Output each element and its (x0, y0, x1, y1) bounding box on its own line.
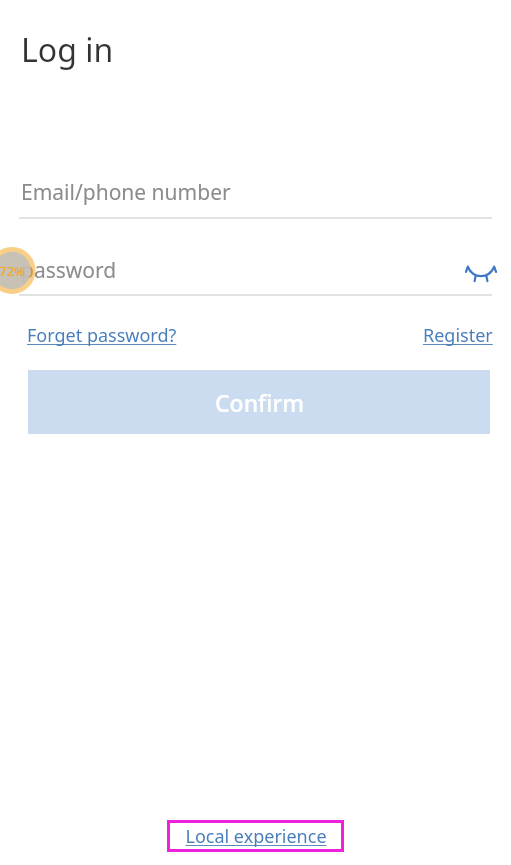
staticText: Register (423, 323, 493, 348)
staticText: Local experience (185, 824, 327, 849)
staticText: Log in (21, 28, 114, 72)
staticText: password (21, 256, 117, 285)
button[interactable]: Local experience (167, 820, 344, 852)
button[interactable]: Show password (462, 252, 500, 290)
button[interactable]: Register (423, 323, 493, 348)
staticText: Email/phone number (21, 178, 231, 207)
staticText: 72% (0, 262, 25, 280)
staticText: Forget password? (27, 323, 177, 348)
button[interactable]: Email/phone number (0, 167, 511, 217)
button[interactable]: password (0, 247, 511, 294)
button[interactable]: Confirm (28, 370, 490, 434)
button[interactable]: Forget password? (27, 323, 177, 348)
staticText: Confirm (215, 387, 304, 418)
